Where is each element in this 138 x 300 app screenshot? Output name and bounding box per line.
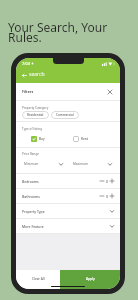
button[interactable]: Maximum bbox=[71, 158, 114, 169]
staticText: Bedrooms bbox=[22, 179, 39, 184]
staticText: Property Type bbox=[22, 209, 45, 214]
staticText: Apply bbox=[86, 277, 95, 281]
staticText: Minimum bbox=[24, 162, 39, 166]
button[interactable]: Apply bbox=[60, 270, 120, 289]
button[interactable]: Back bbox=[21, 72, 27, 78]
button[interactable]: Decrease bbox=[98, 192, 106, 200]
staticText: Price Range bbox=[22, 152, 39, 156]
staticText: 7:04 bbox=[22, 61, 30, 66]
button[interactable]: Clear All bbox=[16, 270, 60, 289]
button[interactable]: More Feature bbox=[16, 219, 120, 233]
staticText: Clear All bbox=[32, 277, 45, 281]
staticText: search bbox=[29, 71, 45, 78]
staticText: Property Category bbox=[22, 106, 49, 110]
button[interactable]: Decrease bbox=[98, 177, 106, 185]
button[interactable]: Buy bbox=[31, 136, 45, 142]
staticText: Maximum bbox=[73, 162, 88, 166]
staticText: Rent bbox=[81, 137, 88, 141]
button[interactable]: Commercial bbox=[51, 111, 79, 119]
staticText: Your Search, Your Rules. bbox=[8, 19, 108, 45]
button[interactable]: Increase bbox=[108, 177, 116, 185]
button[interactable]: Property Type bbox=[16, 204, 120, 218]
button[interactable]: Increase bbox=[108, 192, 116, 200]
button[interactable]: Rent bbox=[73, 136, 88, 142]
staticText: 0 bbox=[106, 179, 108, 184]
staticText: Filters bbox=[22, 89, 34, 94]
button[interactable]: Minimum bbox=[22, 158, 65, 169]
staticText: Commercial bbox=[56, 113, 74, 117]
staticText: Type of listing bbox=[22, 127, 43, 131]
staticText: Bathrooms bbox=[22, 194, 40, 199]
button[interactable]: Close bbox=[106, 88, 114, 96]
staticText: More Feature bbox=[22, 224, 44, 229]
staticText: 0 bbox=[106, 194, 108, 199]
button[interactable]: Residential bbox=[22, 111, 49, 119]
staticText: Buy bbox=[39, 137, 45, 141]
staticText: Residential bbox=[27, 113, 44, 117]
